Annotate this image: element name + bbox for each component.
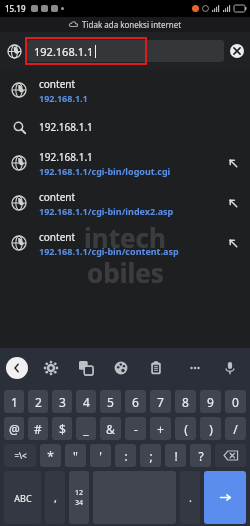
button[interactable]: 8 [175,390,196,413]
button[interactable]: - [125,417,146,440]
button[interactable]: ; [140,444,161,467]
staticText: * [47,448,54,464]
button[interactable]: ABC [4,471,41,524]
button[interactable]: : [115,444,136,467]
button[interactable]: Voice input [219,357,241,379]
staticText: 9 [207,394,214,410]
button[interactable]: Themes [110,357,132,379]
button[interactable]: More [184,357,206,379]
staticText: 192.168.1.1 [39,92,88,104]
button[interactable]: 192.168.1.1 [0,110,250,143]
button[interactable]: =\< [4,444,36,467]
staticText: ! [174,448,178,464]
button[interactable]: 2 [28,390,48,413]
staticText: Tidak ada koneksi internet [82,19,182,30]
button[interactable]: ) [200,417,221,440]
button[interactable]: , [45,471,65,524]
staticText: 192.168.1.1 [39,150,93,164]
staticText: ABC [14,492,32,504]
button[interactable]: Translate [75,357,97,379]
button[interactable]: + [150,417,171,440]
staticText: 2 [35,394,42,410]
button[interactable]: 4 [76,390,96,413]
staticText: 6 [132,394,139,410]
staticText: 192.168.1.1/cgi-bin/logout.cgi [39,165,171,177]
button[interactable]: 0 [225,390,246,413]
button[interactable]: 12 [69,471,89,524]
staticText: 192.168.1.1 [39,120,93,134]
button[interactable]: 192.168.1.1 [0,143,250,183]
button[interactable]: $ [52,417,72,440]
button[interactable]: . [180,471,200,524]
button[interactable]: # [28,417,48,440]
button[interactable]: 7 [150,390,171,413]
staticText: 4 [83,394,90,410]
staticText: " [73,448,78,464]
staticText: - [134,421,138,437]
staticText: & [106,421,115,437]
staticText: 192.168.1.1/cgi-bin/content.asp [39,245,179,257]
staticText: 15.19 [5,3,26,14]
staticText: 34 [75,498,84,508]
button[interactable]: Edit query [222,192,244,214]
staticText: + [157,421,164,437]
staticText: : [124,448,128,464]
staticText: 192.168.1.1 [34,44,94,59]
staticText: content [39,77,76,91]
button[interactable]: 5 [100,390,121,413]
staticText: 1 [11,394,18,410]
button[interactable]: Edit query [222,152,244,174]
staticText: ? [198,448,204,464]
staticText: , [54,490,57,505]
button[interactable]: 9 [200,390,221,413]
button[interactable]: Clear [228,42,246,60]
staticText: 12 [75,488,84,498]
staticText: 3 [59,394,66,410]
button[interactable]: Go [204,471,246,524]
staticText: =\< [14,450,27,461]
button[interactable]: 6 [125,390,146,413]
staticText: # [34,421,42,437]
button[interactable]: Back [6,357,28,379]
button[interactable]: * [40,444,61,467]
staticText: 8 [182,394,189,410]
staticText: . [189,490,192,505]
button[interactable]: Edit query [222,232,244,254]
button[interactable]: content [0,183,250,223]
button[interactable]: Settings [40,357,62,379]
staticText: _ [83,421,89,437]
button[interactable]: ( [175,417,196,440]
button[interactable]: Clipboard [145,357,167,379]
button[interactable]: ? [190,444,211,467]
button[interactable]: content [0,223,250,263]
button[interactable]: & [100,417,121,440]
button[interactable]: Site info [4,41,24,61]
staticText: 192.168.1.1/cgi-bin/index2.asp [39,205,174,217]
button[interactable]: @ [4,417,24,440]
button[interactable]: 192.168.1.1 [27,40,224,62]
button[interactable]: ! [165,444,186,467]
button[interactable]: / [225,417,246,440]
staticText: content [39,230,76,244]
staticText: $ [59,421,66,437]
staticText: / [233,421,238,437]
staticText: 0 [232,394,239,410]
button[interactable]: 1 [4,390,24,413]
button[interactable]: content [0,70,250,110]
button[interactable]: _ [76,417,96,440]
staticText: 7 [157,394,164,410]
staticText: obiles [87,255,164,290]
button[interactable]: 3 [52,390,72,413]
staticText: ( [184,421,188,437]
staticText: intech [84,220,166,255]
staticText: ) [209,421,213,437]
button[interactable]: ' [90,444,111,467]
staticText: content [39,190,76,204]
staticText: ' [99,448,102,464]
button[interactable]: Backspace [215,444,246,467]
staticText: @ [9,421,20,437]
staticText: ; [149,448,153,464]
button[interactable]: " [65,444,86,467]
staticText: 5 [107,394,114,410]
